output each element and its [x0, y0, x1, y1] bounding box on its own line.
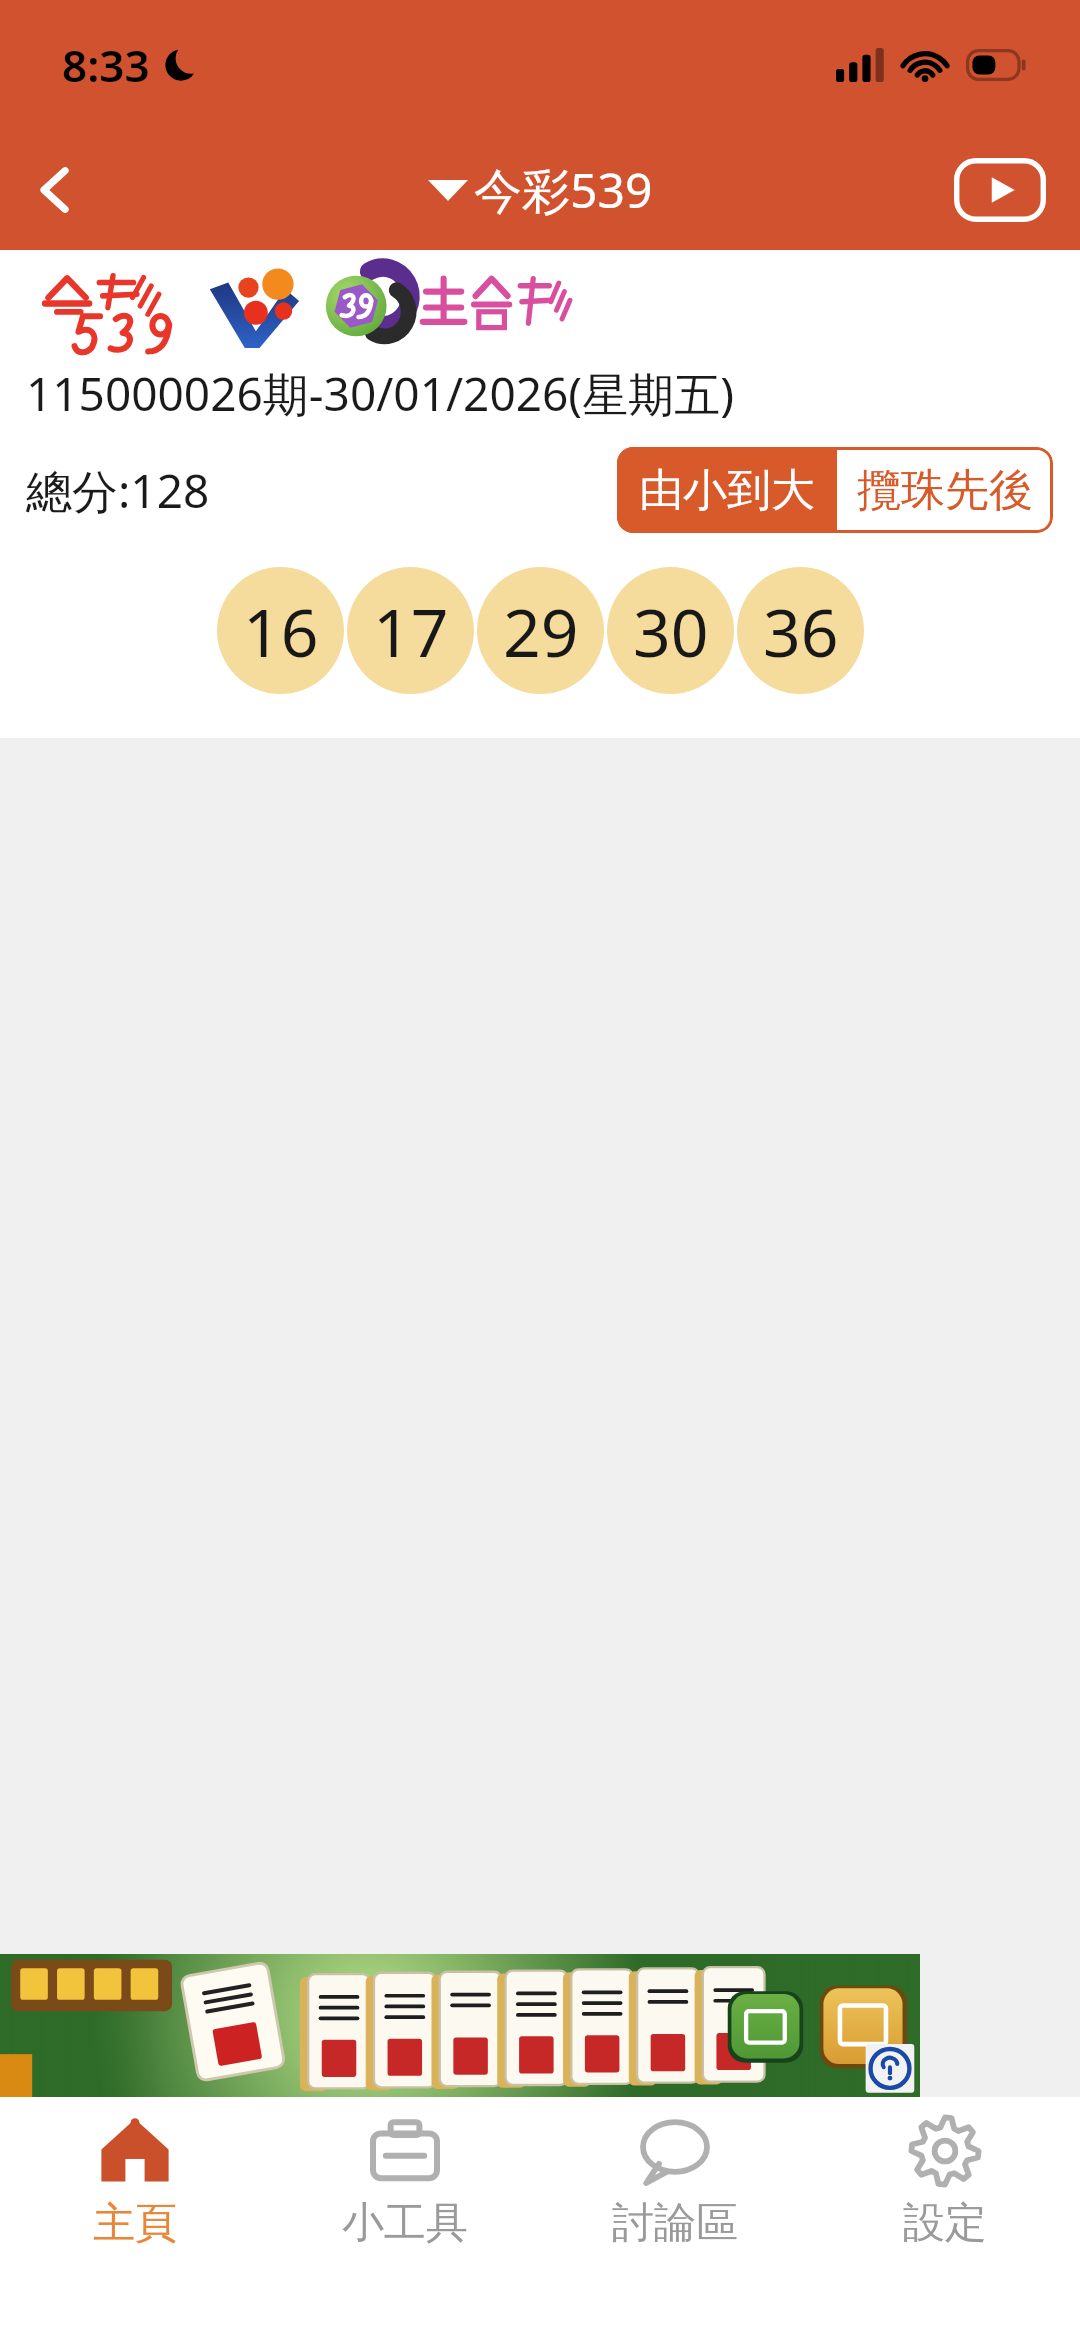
button[interactable]: 主頁 — [0, 2097, 270, 2337]
staticText: 8:33 — [62, 35, 150, 95]
staticText: 總分:128 — [26, 459, 210, 522]
button[interactable]: 29 — [477, 567, 604, 694]
staticText: 攬珠先後 — [857, 463, 1033, 518]
button[interactable]: Advertisement — [0, 1954, 920, 2097]
staticText: 小工具 — [342, 2197, 468, 2250]
staticText: 主頁 — [93, 2197, 177, 2250]
button[interactable]: 36 — [737, 567, 864, 694]
staticText: 今彩539 — [474, 157, 653, 223]
button[interactable]: 討論區 — [540, 2097, 810, 2337]
staticText: 設定 — [903, 2197, 987, 2250]
staticText: 30 — [633, 586, 709, 676]
button[interactable]: Back — [0, 135, 110, 245]
button[interactable]: 今彩539 — [428, 157, 653, 223]
button[interactable]: 30 — [607, 567, 734, 694]
staticText: 29 — [503, 586, 579, 676]
staticText: 討論區 — [612, 2197, 738, 2250]
staticText: 16 — [243, 586, 319, 676]
button[interactable]: 由小到大 — [617, 447, 837, 533]
button[interactable]: Video — [950, 154, 1050, 226]
button[interactable]: 攬珠先後 — [837, 447, 1053, 533]
staticText: 由小到大 — [639, 463, 815, 518]
button[interactable]: 小工具 — [270, 2097, 540, 2337]
button[interactable]: 16 — [217, 567, 344, 694]
button[interactable]: 設定 — [810, 2097, 1080, 2337]
staticText: 17 — [373, 586, 449, 676]
button[interactable]: 17 — [347, 567, 474, 694]
staticText: 36 — [763, 586, 839, 676]
staticText: 115000026期-30/01/2026(星期五) — [26, 362, 734, 425]
